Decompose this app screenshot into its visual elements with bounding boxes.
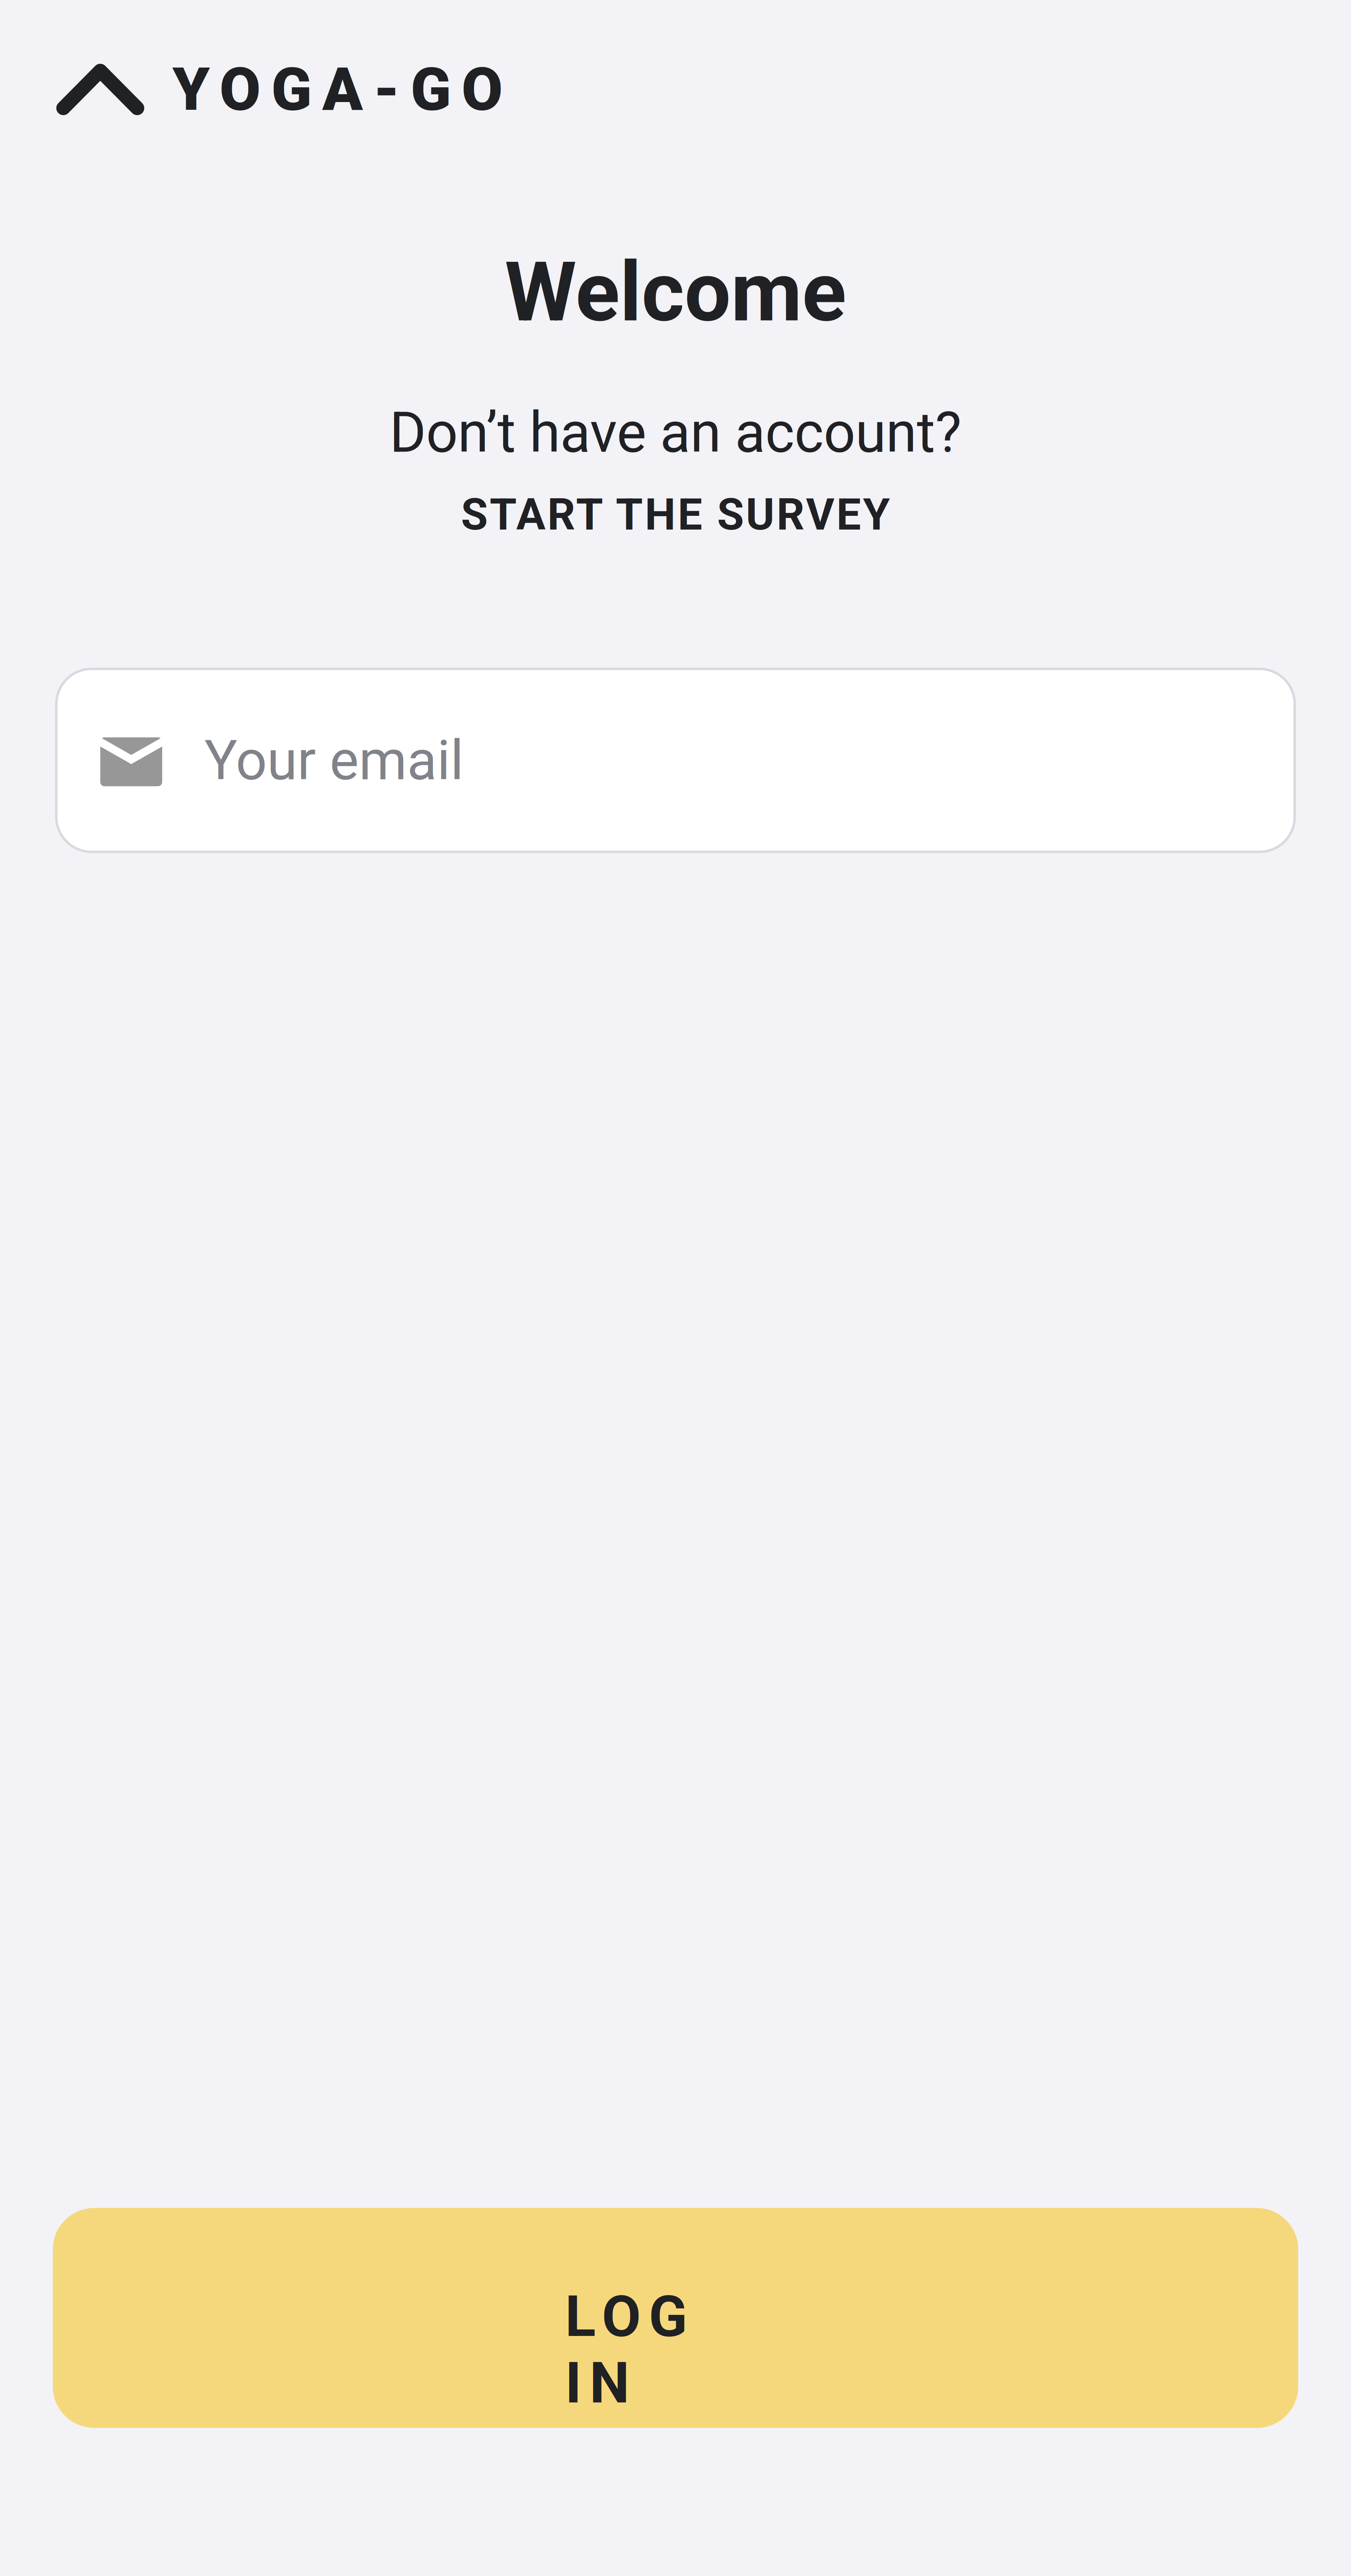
- button[interactable]: LOG IN: [53, 2208, 1298, 2428]
- button[interactable]: START THE SURVEY: [443, 488, 908, 541]
- staticText: Your email: [204, 728, 464, 793]
- staticText: YOGA-GO: [172, 55, 503, 124]
- staticText: LOG IN: [565, 2283, 782, 2350]
- staticText: Welcome: [505, 244, 846, 340]
- button[interactable]: Your email: [56, 669, 1295, 852]
- staticText: START THE SURVEY: [461, 489, 890, 540]
- staticText: Don’t have an account?: [389, 400, 962, 465]
